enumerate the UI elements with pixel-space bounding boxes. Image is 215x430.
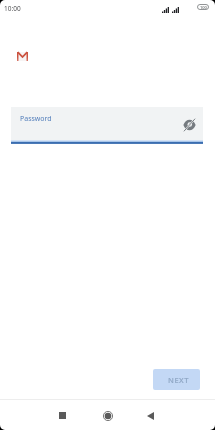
staticText: Password — [20, 114, 52, 124]
staticText: 100 — [200, 5, 207, 10]
button[interactable]: Home — [93, 401, 122, 430]
button[interactable]: Show password — [177, 113, 201, 137]
staticText: 10:00 — [4, 4, 21, 13]
button[interactable]: Back — [136, 401, 165, 430]
button[interactable]: Password — [11, 107, 203, 144]
button[interactable]: Recents — [48, 401, 77, 430]
button[interactable]: NEXT — [153, 369, 200, 390]
staticText: NEXT — [168, 375, 190, 385]
